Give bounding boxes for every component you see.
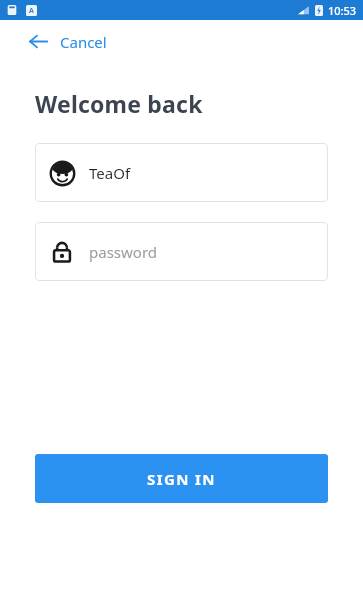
staticText: SIGN IN bbox=[147, 469, 216, 489]
button[interactable]: Username bbox=[35, 143, 328, 202]
button[interactable]: Cancel bbox=[22, 27, 113, 56]
staticText: A bbox=[29, 6, 34, 16]
other: Password bbox=[50, 240, 74, 264]
staticText: TeaOf bbox=[89, 163, 131, 183]
button[interactable]: Password bbox=[35, 222, 328, 281]
staticText: 10:53 bbox=[328, 3, 357, 18]
staticText: Cancel bbox=[60, 32, 107, 52]
staticText: Welcome back bbox=[35, 88, 203, 119]
staticText: password bbox=[89, 242, 157, 262]
button[interactable]: SIGN IN bbox=[35, 454, 328, 503]
other: Username bbox=[50, 161, 75, 186]
